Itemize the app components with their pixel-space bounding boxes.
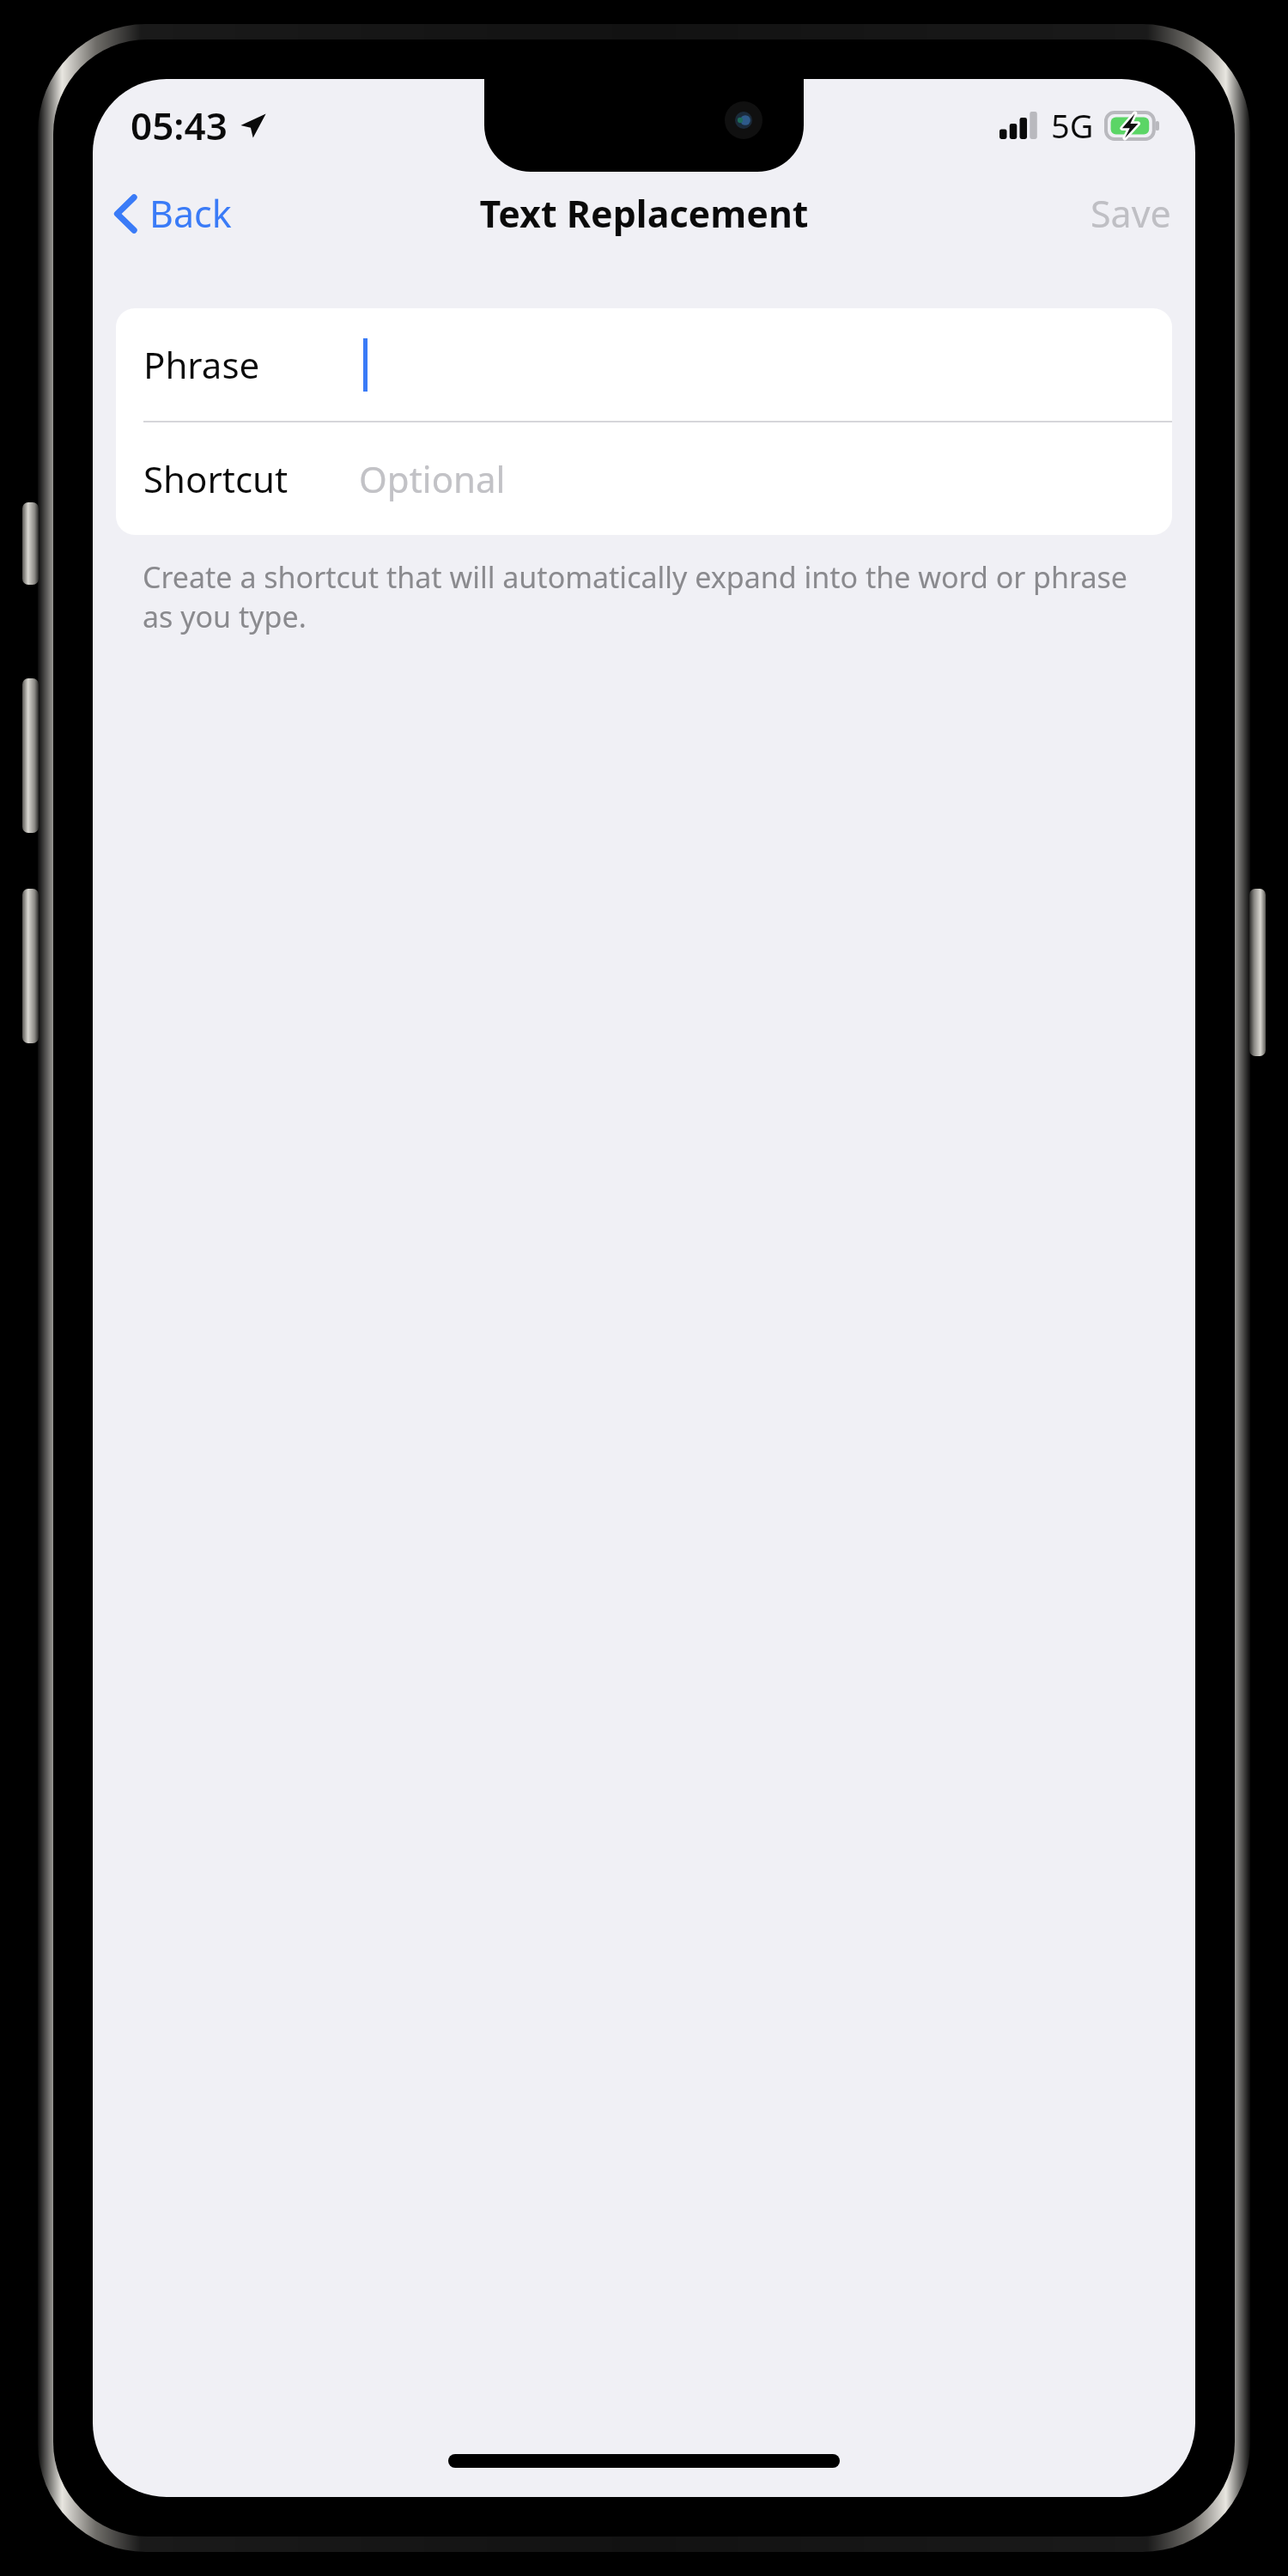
staticText: Phrase: [143, 340, 260, 389]
staticText: Text Replacement: [479, 188, 809, 239]
staticText: Back: [149, 188, 232, 239]
button[interactable]: Phrase: [116, 308, 1172, 421]
staticText: Shortcut: [143, 454, 289, 503]
staticText: Save: [1091, 188, 1171, 239]
staticText: Create a shortcut that will automaticall…: [143, 557, 1154, 636]
button[interactable]: Shortcut: [116, 422, 1172, 535]
staticText: 5G: [1051, 103, 1094, 148]
staticText: 05:43: [131, 100, 228, 151]
button[interactable]: Back: [93, 179, 252, 247]
button[interactable]: Save: [1066, 178, 1195, 249]
staticText: Optional: [359, 454, 506, 503]
